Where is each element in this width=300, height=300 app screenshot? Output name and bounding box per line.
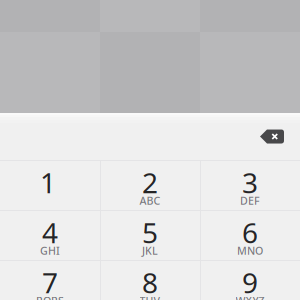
button[interactable]: 5 xyxy=(100,210,200,260)
button[interactable]: 1 xyxy=(0,160,100,210)
staticText: DEF xyxy=(240,193,260,208)
staticText: 6 xyxy=(242,214,258,251)
button[interactable]: 9 xyxy=(200,260,300,300)
staticText: 4 xyxy=(42,214,58,251)
button[interactable]: 8 xyxy=(100,260,200,300)
staticText: 2 xyxy=(142,164,158,201)
staticText: 8 xyxy=(142,264,158,300)
button[interactable]: 4 xyxy=(0,210,100,260)
button[interactable]: 7 xyxy=(0,260,100,300)
staticText: 1 xyxy=(40,164,56,201)
staticText: MNO xyxy=(237,243,263,258)
staticText: PQRS xyxy=(36,293,64,300)
staticText: WXYZ xyxy=(235,293,264,300)
staticText: 5 xyxy=(142,214,158,251)
staticText: GHI xyxy=(40,243,60,258)
staticText: JKL xyxy=(142,243,158,258)
button[interactable]: 6 xyxy=(200,210,300,260)
staticText: 9 xyxy=(242,264,258,300)
button[interactable]: 3 xyxy=(200,160,300,210)
staticText: ABC xyxy=(139,193,160,208)
button[interactable]: Delete xyxy=(248,115,296,157)
staticText: 3 xyxy=(242,164,258,201)
staticText: 7 xyxy=(42,264,58,300)
staticText: TUV xyxy=(139,293,160,300)
button[interactable]: 2 xyxy=(100,160,200,210)
